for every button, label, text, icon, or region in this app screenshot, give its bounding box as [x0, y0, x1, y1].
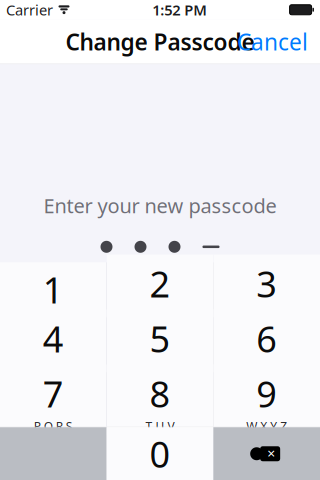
button[interactable]: 7	[0, 372, 106, 427]
staticText: 2	[149, 260, 170, 307]
staticText: 4	[43, 315, 64, 362]
staticText: 0	[149, 430, 170, 478]
staticText: ✕	[267, 448, 276, 460]
staticText: 8	[149, 370, 170, 417]
button[interactable]: 3	[214, 262, 320, 317]
staticText: Carrier	[6, 0, 53, 19]
staticText: 5	[149, 315, 170, 362]
button[interactable]: 5	[107, 317, 213, 372]
button[interactable]: 6	[214, 317, 320, 372]
staticText: 1:52 PM	[152, 0, 207, 19]
button[interactable]: Cancel	[227, 19, 318, 65]
button[interactable]: 2	[107, 262, 213, 317]
staticText: P Q R S	[34, 418, 73, 434]
staticText: Cancel	[237, 27, 308, 57]
button[interactable]: 8	[107, 372, 213, 427]
button[interactable]: 0	[107, 427, 213, 480]
staticText: 7	[43, 370, 64, 417]
staticText: Enter your new passcode	[43, 192, 276, 219]
button[interactable]: 9	[214, 372, 320, 427]
staticText: Change Passcode	[65, 27, 254, 57]
staticText: 3	[256, 260, 277, 307]
button[interactable]: Delete	[213, 427, 320, 480]
staticText: 9	[256, 370, 277, 417]
button[interactable]: Blank	[0, 427, 107, 480]
staticText: 6	[256, 315, 277, 362]
staticText: W X Y Z	[246, 418, 287, 434]
staticText: 1	[43, 266, 64, 313]
button[interactable]: 4	[0, 317, 106, 372]
button[interactable]: 1	[0, 262, 106, 317]
staticText: T U V	[145, 418, 174, 434]
